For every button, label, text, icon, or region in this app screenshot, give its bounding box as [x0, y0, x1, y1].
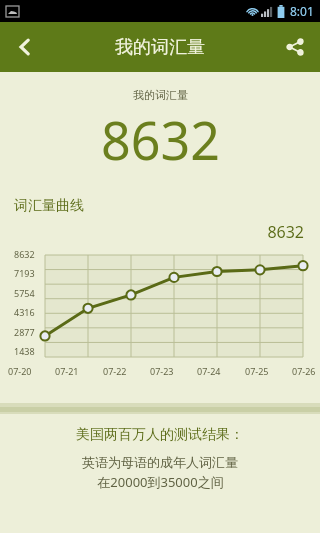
staticText: 07-23 — [150, 365, 174, 377]
staticText: 英语为母语的成年人词汇量 — [82, 454, 238, 470]
staticText: 4316 — [14, 306, 35, 318]
staticText: 07-22 — [103, 365, 127, 377]
staticText: 1438 — [14, 345, 35, 357]
button[interactable]: Share — [270, 22, 320, 72]
staticText: 07-20 — [8, 365, 32, 377]
staticText: 美国两百万人的测试结果： — [76, 426, 244, 444]
staticText: 07-25 — [245, 365, 269, 377]
staticText: 8632 — [0, 221, 304, 243]
staticText: 8:01 — [290, 3, 314, 19]
staticText: 07-24 — [197, 365, 221, 377]
staticText: 07-26 — [292, 365, 316, 377]
staticText: 我的词汇量 — [115, 36, 205, 59]
staticText: 2877 — [14, 326, 35, 338]
staticText: 7193 — [14, 267, 35, 279]
staticText: 词汇量曲线 — [14, 197, 84, 215]
staticText: 8632 — [101, 104, 220, 175]
staticText: 07-21 — [55, 365, 79, 377]
staticText: 在20000到35000之间 — [97, 473, 224, 491]
staticText: 我的词汇量 — [133, 88, 188, 102]
button[interactable]: Back — [0, 22, 50, 72]
staticText: 5754 — [14, 287, 35, 299]
staticText: 8632 — [14, 248, 35, 260]
